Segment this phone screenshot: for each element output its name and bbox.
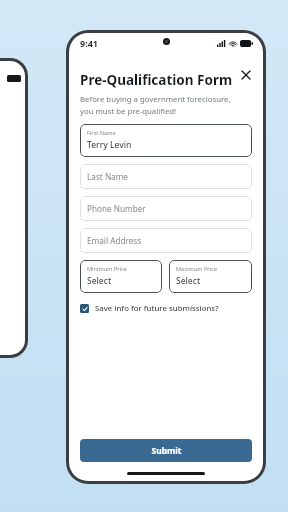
staticText: Terry Levin (87, 139, 132, 151)
button[interactable]: Minimum Price (80, 260, 162, 293)
button[interactable]: Phone Number (80, 196, 252, 221)
button[interactable]: First Name (80, 124, 252, 157)
staticText: Before buying a government foreclosure, … (80, 94, 231, 116)
staticText: Save info for future submissions? (95, 303, 219, 314)
button[interactable]: Maximum Price (169, 260, 252, 293)
button[interactable]: Submit (80, 439, 252, 462)
button[interactable]: Save info for future submissions? (80, 303, 252, 314)
staticText: First Name (87, 129, 116, 137)
staticText: Phone Number (87, 203, 146, 214)
button[interactable]: Close (236, 65, 256, 85)
staticText: Pre-Qualification Form (80, 71, 233, 89)
staticText: Select (87, 275, 112, 287)
button[interactable]: Last Name (80, 164, 252, 189)
staticText: Submit (151, 445, 182, 457)
staticText: 9:41 (80, 37, 98, 49)
button[interactable]: Email Address (80, 228, 252, 253)
staticText: Minimum Price (87, 265, 127, 273)
staticText: Last Name (87, 171, 128, 182)
staticText: Select (176, 275, 201, 287)
staticText: Email Address (87, 235, 142, 246)
staticText: Maximum Price (176, 265, 217, 273)
